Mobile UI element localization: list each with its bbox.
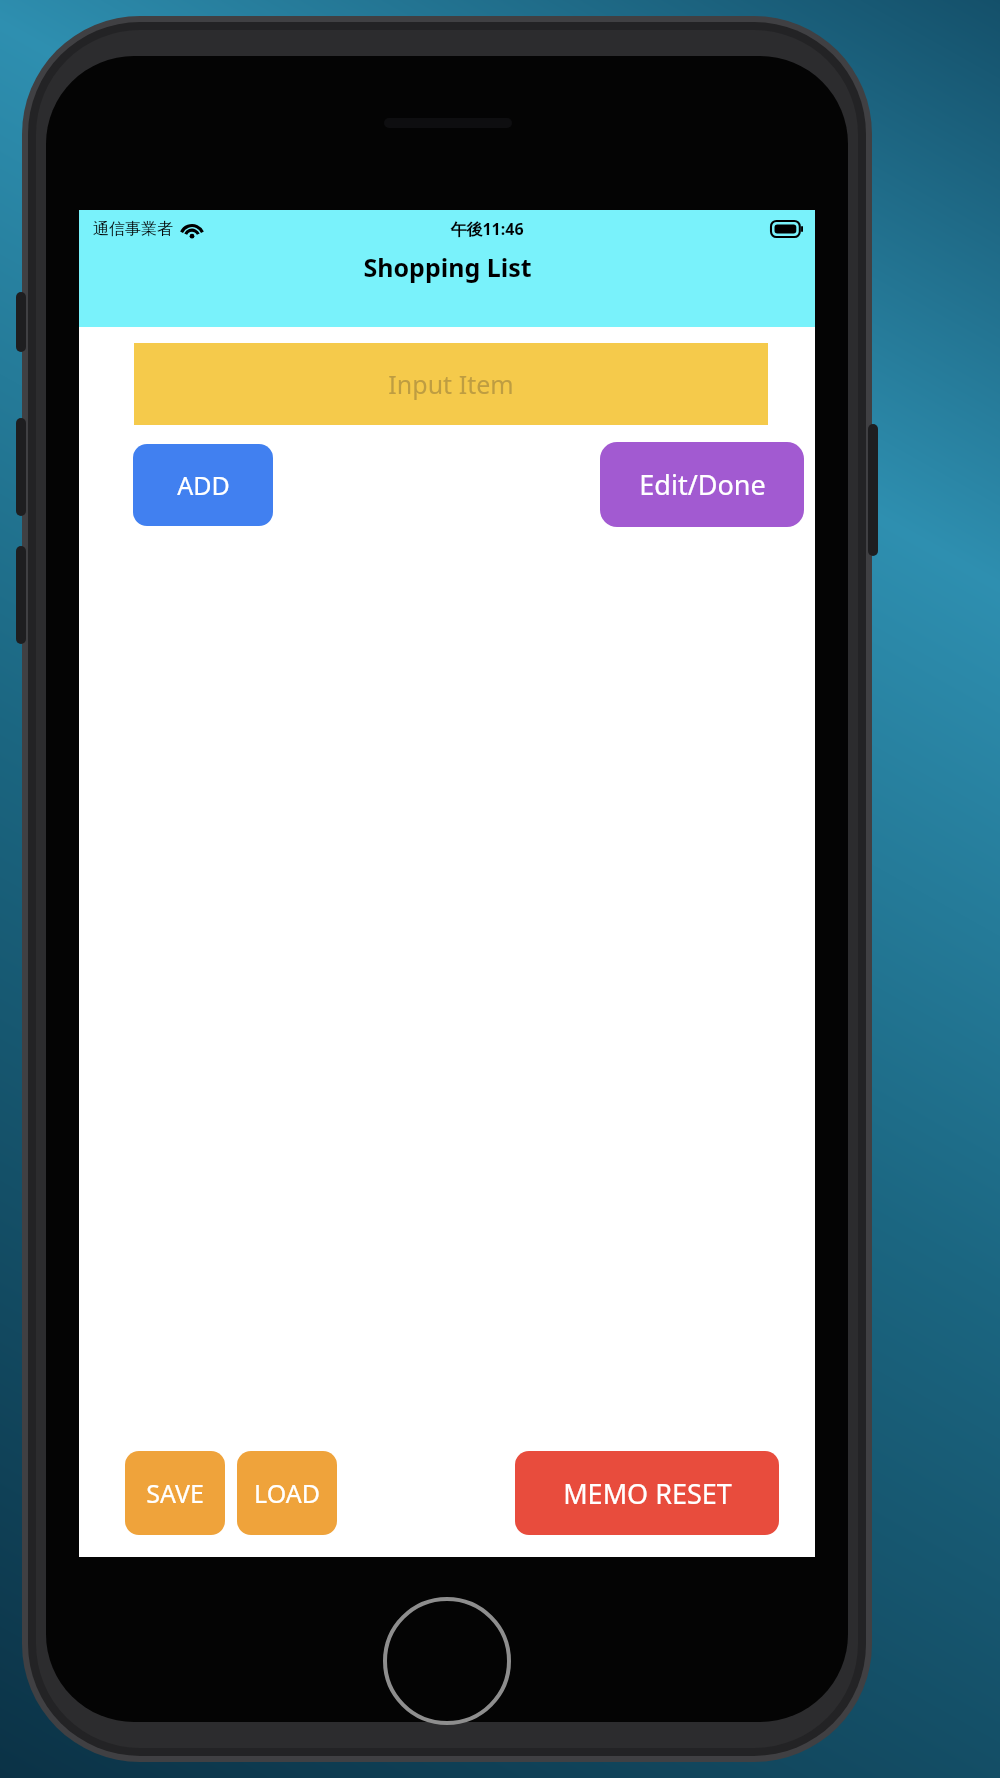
button[interactable]: SAVE	[125, 1451, 225, 1535]
staticText: 午後11:46	[450, 218, 524, 240]
staticText: Input Item	[388, 367, 514, 401]
button[interactable]: LOAD	[237, 1451, 337, 1535]
other: Battery	[771, 221, 803, 237]
other: Wi-Fi	[180, 220, 204, 238]
button[interactable]: Input Item	[134, 343, 768, 425]
staticText: ADD	[177, 468, 230, 502]
staticText: Edit/Done	[639, 466, 766, 503]
button[interactable]: Edit/Done	[600, 442, 804, 527]
staticText: Shopping List	[363, 250, 532, 284]
button[interactable]: MEMO RESET	[515, 1451, 779, 1535]
button[interactable]: ADD	[133, 444, 273, 526]
staticText: SAVE	[146, 1476, 204, 1510]
staticText: MEMO RESET	[563, 1475, 732, 1512]
staticText: 通信事業者	[93, 219, 173, 239]
staticText: LOAD	[254, 1476, 320, 1510]
